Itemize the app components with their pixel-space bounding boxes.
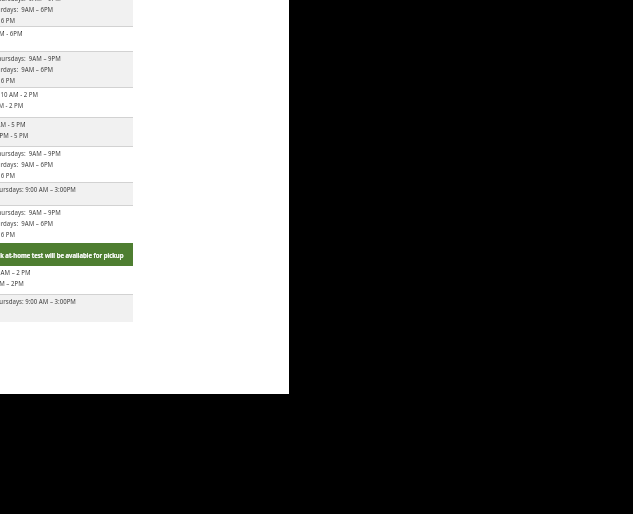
staticText: Mondays-Thursdays: 9AM – 9PM	[0, 0, 61, 3]
button[interactable]: Saturday: 10 AM – 2 PM	[0, 266, 133, 295]
staticText: Sundays: 1 PM - 5 PM	[0, 130, 28, 140]
staticText: Saturdays: 10 AM - 2 PM	[0, 89, 38, 99]
staticText: Mondays-Thursdays: 9:00 AM – 3:00PM	[0, 296, 76, 306]
staticText: Fridays-Saturdays: 9AM – 6PM	[0, 159, 54, 169]
staticText: Sund: 10 AM - 2 PM	[0, 100, 24, 110]
staticText: Fridays-Saturdays: 9AM – 6PM	[0, 218, 54, 228]
staticText: Saturday: 10 AM – 2 PM	[0, 267, 31, 277]
staticText: Fridays-Saturdays: 9AM – 6PM	[0, 4, 54, 14]
button[interactable]: Saturdays: 10 AM - 2 PM	[0, 88, 133, 118]
staticText: Sundas: 10AM – 2PM	[0, 278, 24, 288]
button[interactable]: Saturdys: 9 AM - 5 PM	[0, 118, 133, 147]
staticText: Fridays-Saturdays: 9AM – 6PM	[0, 64, 54, 74]
staticText: Mondays-Thursdays: 9AM – 9PM	[0, 207, 61, 217]
button[interactable]: Mondays-Thursdays: 9AM – 9PM	[0, 147, 133, 183]
staticText: Sun. 10AM - 6 PM	[0, 229, 16, 239]
staticText: Mondays-Thursdays: 9AM – 9PM	[0, 148, 61, 158]
button[interactable]: Starting next week at-home test will be …	[0, 243, 133, 266]
staticText: Mondays-Thursdays: 9:00 AM – 3:00PM	[0, 184, 76, 194]
staticText: Saturdys: 9 AM - 5 PM	[0, 119, 26, 129]
button[interactable]: Mondays-Thursdays: 9AM – 9PM	[0, 206, 133, 243]
button[interactable]: Mondays-Thursdays: 9:00 AM – 3:00PM	[0, 183, 133, 206]
staticText: Sun. 10AM - 6 PM	[0, 170, 16, 180]
staticText: Sun. 10AM - 6 PM	[0, 75, 16, 85]
button[interactable]: Mondays-Thursdays: 9AM – 9PM	[0, 52, 133, 88]
button[interactable]: Sunday: 10 AM - 6PM	[0, 27, 133, 52]
button[interactable]: Mondays-Thursdays: 9AM – 9PM	[0, 0, 133, 27]
staticText: Starting next week at-home test will be …	[0, 250, 124, 260]
staticText: Mondays-Thursdays: 9AM – 9PM	[0, 53, 61, 63]
staticText: Sun. 10AM - 6 PM	[0, 15, 16, 25]
button[interactable]: Mondays-Thursdays: 9:00 AM – 3:00PM	[0, 295, 133, 322]
staticText: Sunday: 10 AM - 6PM	[0, 28, 23, 38]
